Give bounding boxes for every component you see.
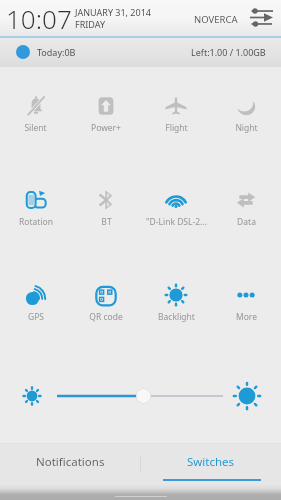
staticText: Today:0B <box>37 46 76 58</box>
staticText: Silent <box>24 122 47 134</box>
staticText: Data <box>237 216 256 228</box>
staticText: FRIDAY <box>75 18 106 30</box>
button[interactable] <box>0 380 281 413</box>
button[interactable]: More <box>211 284 281 324</box>
staticText: Left:1.00 / 1.00GB <box>191 46 266 58</box>
staticText: JANUARY 31, 2014 <box>75 6 151 18</box>
staticText: QR code <box>89 311 123 323</box>
staticText: Notifications <box>36 454 105 470</box>
button[interactable]: BT <box>71 189 141 229</box>
button[interactable]: Notifications <box>0 443 140 483</box>
staticText: More <box>236 311 257 323</box>
button[interactable]: Night <box>211 95 281 135</box>
button[interactable]: Power+ <box>71 95 141 135</box>
staticText: "D-Link DSL-2... <box>146 216 207 228</box>
button[interactable]: Backlight <box>141 284 211 324</box>
button[interactable]: "D-Link DSL-2... <box>141 189 211 229</box>
button[interactable]: Flight <box>141 95 211 135</box>
button[interactable]: GPS <box>0 284 71 324</box>
button[interactable]: Today:0B <box>0 38 281 67</box>
button[interactable]: Quick settings <box>249 8 274 27</box>
staticText: Rotation <box>19 216 53 228</box>
staticText: Flight <box>165 122 188 134</box>
staticText: NOVERCA <box>194 13 238 26</box>
staticText: GPS <box>28 311 44 323</box>
staticText: Switches <box>187 454 235 470</box>
button[interactable]: Silent <box>0 95 71 135</box>
staticText: BT <box>101 216 112 228</box>
button[interactable]: QR code <box>71 284 141 324</box>
staticText: 10:07 <box>6 1 72 36</box>
staticText: Night <box>235 122 258 134</box>
staticText: Power+ <box>91 122 121 134</box>
button[interactable]: Switches <box>140 443 281 483</box>
button[interactable]: Rotation <box>0 189 71 229</box>
button[interactable]: Data <box>211 189 281 229</box>
staticText: Backlight <box>158 311 195 323</box>
